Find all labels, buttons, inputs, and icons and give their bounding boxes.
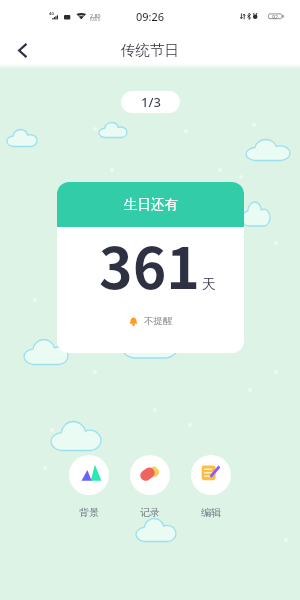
staticText: 92 [272, 13, 278, 20]
staticText: 不提醒 [144, 315, 173, 327]
button[interactable]: 生日还有 [57, 182, 244, 353]
staticText: 天 [202, 276, 216, 294]
staticText: 09:26 [0, 9, 300, 24]
staticText: 背景 [69, 506, 109, 519]
staticText: 记录 [130, 506, 170, 519]
staticText: 1/3 [141, 93, 161, 111]
button[interactable]: Back [7, 34, 39, 66]
staticText: 传统节日 [0, 41, 300, 59]
staticText: KB/s [90, 16, 101, 23]
staticText: HD [65, 15, 72, 21]
staticText: 2.80 [90, 12, 101, 19]
button[interactable]: 1/3 [121, 91, 180, 113]
button[interactable]: 背景 [69, 455, 109, 519]
staticText: 4G [49, 11, 55, 16]
staticText: 361 [99, 223, 200, 306]
button[interactable]: 记录 [130, 455, 170, 519]
staticText: 编辑 [191, 506, 231, 519]
button[interactable]: 编辑 [191, 455, 231, 519]
staticText: 生日还有 [124, 196, 178, 213]
